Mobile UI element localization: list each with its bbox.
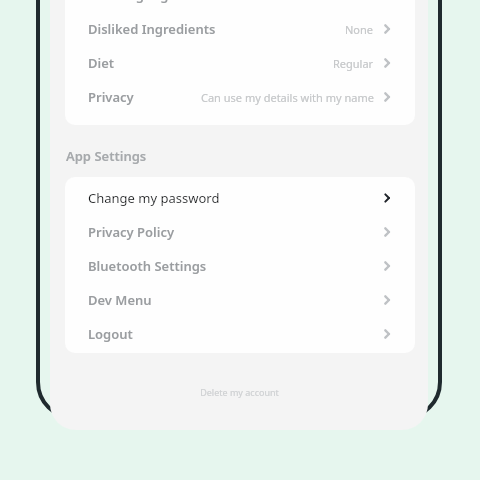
- staticText: Can use my details with my name: [201, 90, 374, 105]
- staticText: App Settings: [66, 147, 147, 165]
- staticText: Change my password: [88, 189, 220, 207]
- button[interactable]: Bluetooth Settings: [80, 249, 400, 283]
- staticText: Privacy Policy: [88, 223, 175, 241]
- button[interactable]: Diet: [80, 46, 400, 80]
- button[interactable]: Privacy Policy: [80, 215, 400, 249]
- button[interactable]: Avoiding Ingredients: [80, 0, 400, 12]
- staticText: Avoiding Ingredients: [88, 0, 221, 4]
- staticText: Logout: [88, 325, 133, 343]
- staticText: Regular: [333, 56, 374, 71]
- button[interactable]: Logout: [80, 317, 400, 351]
- staticText: Delete my account: [200, 386, 279, 398]
- staticText: Bluetooth Settings: [88, 257, 207, 275]
- button[interactable]: Delete my account: [50, 382, 428, 402]
- button[interactable]: Disliked Ingredients: [80, 12, 400, 46]
- staticText: Diet: [88, 54, 115, 72]
- button[interactable]: Dev Menu: [80, 283, 400, 317]
- staticText: Dev Menu: [88, 291, 152, 309]
- staticText: Privacy: [88, 88, 134, 106]
- staticText: None: [345, 22, 374, 37]
- staticText: Disliked Ingredients: [88, 20, 216, 38]
- button[interactable]: Privacy: [80, 80, 400, 114]
- button[interactable]: Change my password: [80, 181, 400, 215]
